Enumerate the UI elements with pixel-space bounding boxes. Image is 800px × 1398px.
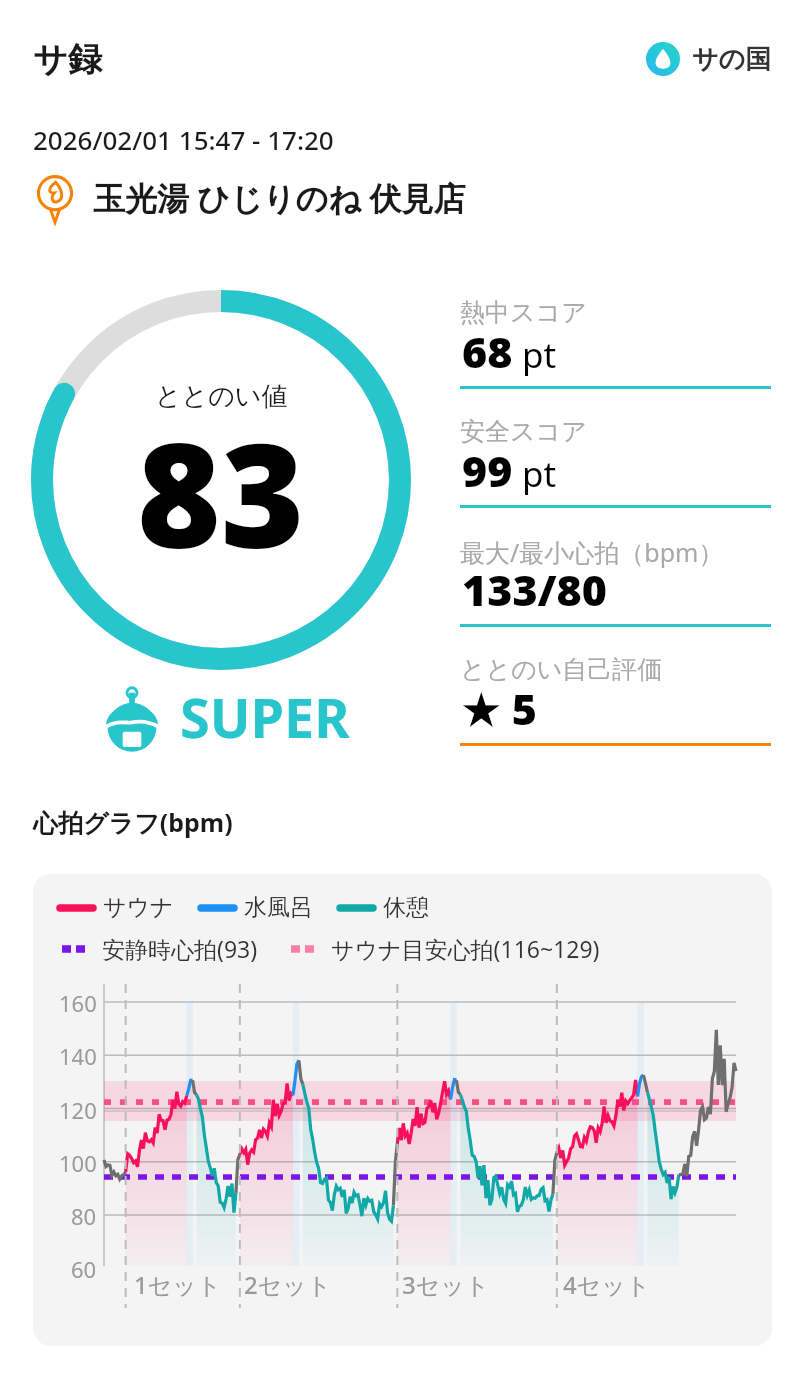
staticText: 60 xyxy=(71,1254,97,1284)
staticText: 83 xyxy=(137,395,305,590)
staticText: SUPER xyxy=(180,680,350,754)
staticText: 玉光湯 ひじりのね 伏見店 xyxy=(93,176,466,220)
staticText: 熱中スコア xyxy=(460,297,587,328)
staticText: ★ 5 xyxy=(462,679,537,738)
button[interactable]: 安全スコア xyxy=(460,416,771,508)
staticText: 安静時心拍(93) xyxy=(102,933,258,964)
staticText: 最大/最小心拍（bpm） xyxy=(460,535,724,569)
staticText: 心拍グラフ(bpm) xyxy=(33,805,233,839)
staticText: サウナ目安心拍(116~129) xyxy=(331,933,600,964)
staticText: 80 xyxy=(71,1201,97,1231)
staticText: 160 xyxy=(59,988,97,1018)
staticText: 2セット xyxy=(244,1268,332,1301)
button[interactable]: 最大/最小心拍（bpm） xyxy=(460,535,771,627)
staticText: 100 xyxy=(59,1148,97,1178)
staticText: pt xyxy=(522,450,557,498)
staticText: pt xyxy=(522,331,557,379)
staticText: サの国 xyxy=(692,43,772,76)
staticText: 140 xyxy=(59,1041,97,1071)
staticText: 133/80 xyxy=(462,560,607,619)
button[interactable]: 熱中スコア xyxy=(460,297,771,389)
staticText: 3セット xyxy=(402,1268,490,1301)
staticText: 1セット xyxy=(134,1268,222,1301)
staticText: 99 xyxy=(462,441,513,500)
staticText: 2026/02/01 15:47 - 17:20 xyxy=(33,122,334,157)
staticText: 休憩 xyxy=(383,893,429,922)
button[interactable]: 玉光湯 ひじりのね 伏見店 xyxy=(31,174,466,222)
staticText: 120 xyxy=(59,1095,97,1125)
staticText: 68 xyxy=(462,322,513,381)
staticText: ととのい値 xyxy=(155,380,288,413)
button[interactable]: ととのい自己評価 xyxy=(460,654,771,746)
button[interactable]: SUPER xyxy=(106,680,350,754)
button[interactable]: サの国 logo xyxy=(646,42,772,76)
staticText: サ録 xyxy=(33,38,102,81)
staticText: ととのい自己評価 xyxy=(460,654,663,685)
staticText: 安全スコア xyxy=(460,416,587,447)
staticText: 4セット xyxy=(563,1268,651,1301)
staticText: サウナ xyxy=(103,893,174,922)
staticText: 水風呂 xyxy=(244,893,313,922)
